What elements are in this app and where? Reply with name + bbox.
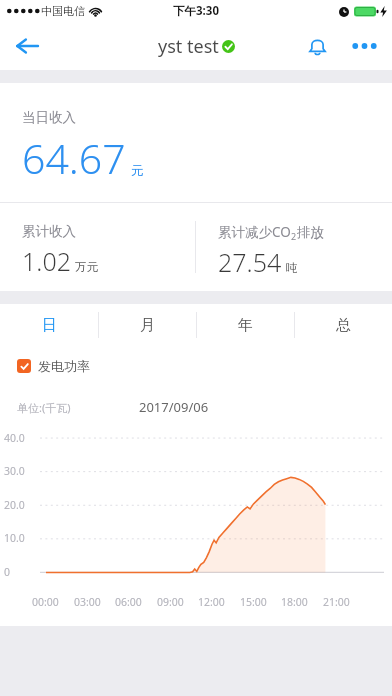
- staticText: 40.0: [4, 431, 25, 445]
- staticText: 年: [238, 316, 253, 335]
- staticText: 下午3:30: [173, 3, 219, 19]
- staticText: 0: [4, 565, 11, 579]
- button[interactable]: More options: [340, 22, 388, 70]
- staticText: 元: [131, 163, 144, 179]
- staticText: 日: [42, 316, 57, 335]
- staticText: yst test: [158, 34, 219, 59]
- staticText: 吨: [286, 261, 298, 275]
- staticText: 2: [291, 230, 297, 242]
- staticText: 发电功率: [38, 358, 90, 374]
- staticText: 21:00: [323, 595, 350, 609]
- staticText: 单位:(千瓦): [17, 400, 71, 415]
- staticText: 中国电信: [41, 4, 85, 18]
- button[interactable]: 累计收入: [0, 203, 195, 278]
- staticText: 总: [336, 316, 351, 335]
- staticText: 27.54: [218, 245, 282, 279]
- staticText: 1.02: [22, 244, 71, 278]
- staticText: 累计减少CO: [218, 223, 291, 241]
- staticText: 30.0: [4, 464, 25, 478]
- staticText: 12:00: [198, 595, 225, 609]
- staticText: 10.0: [4, 531, 25, 545]
- button[interactable]: 月: [99, 304, 196, 346]
- staticText: 累计收入: [22, 223, 76, 240]
- staticText: 06:00: [115, 595, 142, 609]
- staticText: 万元: [75, 260, 98, 274]
- staticText: 2017/09/06: [139, 398, 209, 416]
- staticText: 当日收入: [22, 109, 76, 126]
- staticText: 18:00: [281, 595, 308, 609]
- staticText: 64.67: [22, 130, 126, 186]
- button[interactable]: Back: [0, 22, 54, 70]
- staticText: 20.0: [4, 498, 25, 512]
- staticText: 03:00: [74, 595, 101, 609]
- staticText: 09:00: [157, 595, 184, 609]
- button[interactable]: 总: [295, 304, 392, 346]
- staticText: 00:00: [32, 595, 59, 609]
- button[interactable]: 累计减少CO: [196, 203, 392, 279]
- button[interactable]: 日: [0, 304, 98, 346]
- button[interactable]: Notifications: [294, 22, 340, 70]
- staticText: 排放: [297, 224, 324, 241]
- staticText: 月: [140, 316, 155, 335]
- button[interactable]: 年: [197, 304, 294, 346]
- button[interactable]: 发电功率: [17, 358, 90, 374]
- staticText: 15:00: [240, 595, 267, 609]
